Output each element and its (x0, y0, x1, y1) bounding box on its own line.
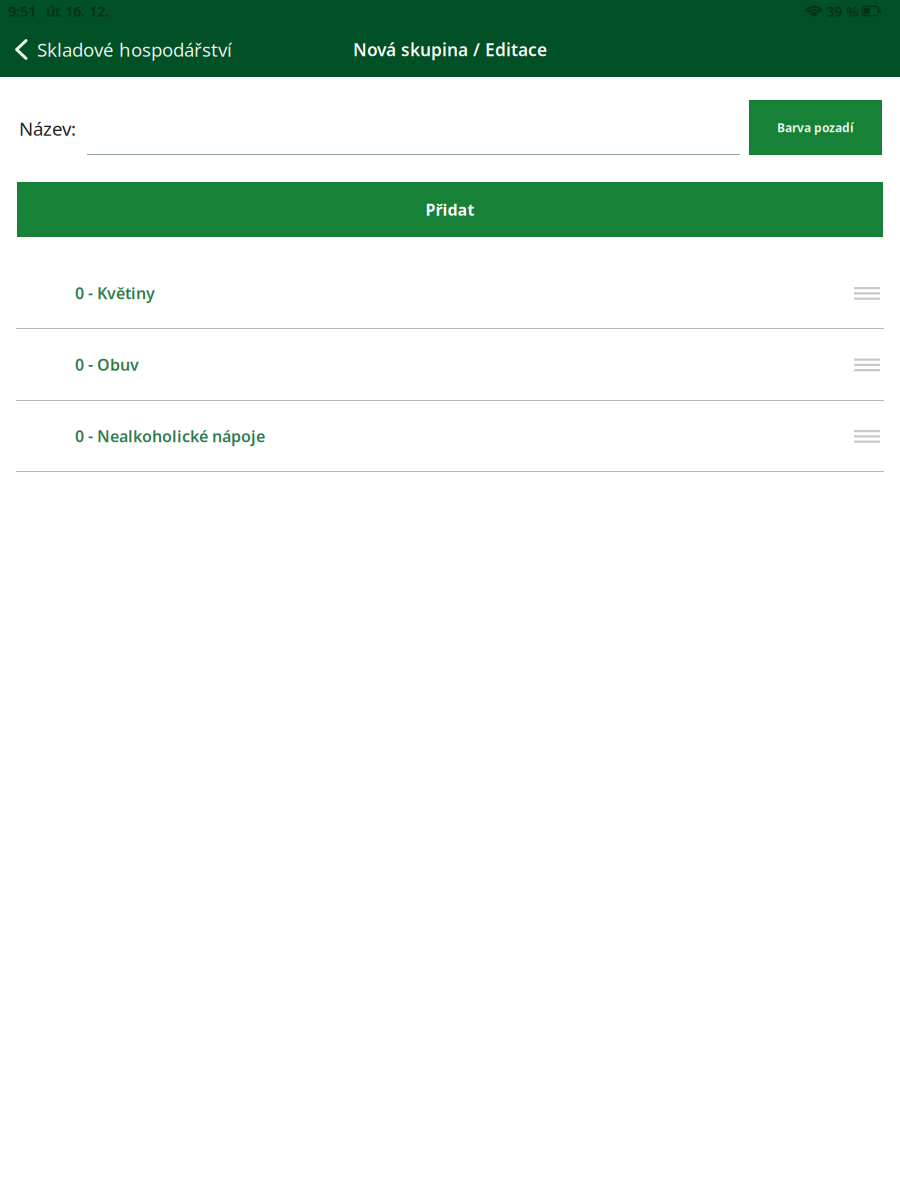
button[interactable]: Barva pozadí (749, 100, 882, 155)
button[interactable]: 0 - Obuv (0, 329, 900, 400)
staticText: 0 - Květiny (75, 282, 155, 304)
staticText: 39 % (826, 1, 859, 21)
staticText: Barva pozadí (777, 119, 854, 135)
staticText: 0 - Obuv (75, 354, 139, 375)
button[interactable]: Přidat (17, 182, 883, 237)
button[interactable]: Skladové hospodářství (0, 24, 244, 74)
staticText: út 16. 12. (46, 1, 109, 21)
staticText: 0 - Nealkoholické nápoje (75, 425, 265, 447)
staticText: Skladové hospodářství (37, 37, 232, 62)
button[interactable]: 0 - Nealkoholické nápoje (0, 401, 900, 471)
staticText: Nová skupina / Editace (353, 38, 547, 61)
staticText: 9:51 (8, 1, 36, 21)
staticText: Přidat (425, 199, 474, 220)
staticText: Název: (19, 116, 76, 141)
button[interactable]: 0 - Květiny (0, 258, 900, 328)
